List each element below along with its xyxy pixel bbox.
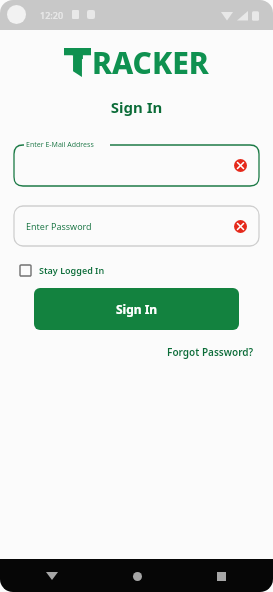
button[interactable]: Clear error	[234, 159, 247, 172]
button[interactable]: Forgot Password?	[167, 345, 254, 359]
button[interactable]: Back	[40, 564, 64, 588]
staticText: Forgot Password?	[167, 345, 254, 359]
button[interactable]: Sign In	[34, 288, 239, 330]
button[interactable]: Enter E-Mail Address	[14, 139, 259, 186]
button[interactable]: Stay Logged In	[20, 264, 105, 276]
button[interactable]: Clear error	[234, 220, 247, 233]
staticText: Sign In	[0, 97, 273, 117]
staticText: Enter E-Mail Address	[26, 140, 94, 150]
button[interactable]: Home	[125, 564, 149, 588]
button[interactable]: Recent apps	[209, 564, 233, 588]
button[interactable]: Enter Password	[14, 206, 259, 246]
staticText: 12:20	[40, 9, 64, 21]
staticText: RACKER	[92, 42, 209, 83]
staticText: Sign In	[116, 301, 158, 317]
staticText: Enter Password	[26, 220, 92, 232]
staticText: Stay Logged In	[39, 264, 105, 276]
